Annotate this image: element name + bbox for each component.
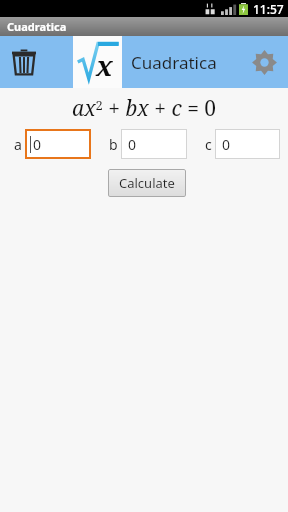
staticText: Calculate: [119, 174, 175, 192]
staticText: c: [205, 135, 212, 154]
staticText: a: [14, 135, 22, 154]
button[interactable]: Clear: [6, 44, 42, 80]
staticText: x: [96, 46, 113, 84]
staticText: b: [109, 135, 118, 154]
staticText: 0: [33, 135, 42, 154]
staticText: ax2 + bx + c = 0: [72, 94, 217, 123]
button[interactable]: 0: [215, 129, 280, 159]
staticText: 0: [222, 135, 231, 154]
button[interactable]: Calculate: [108, 169, 186, 197]
staticText: 0: [128, 135, 137, 154]
button[interactable]: Settings: [245, 43, 283, 81]
staticText: Cuadratica: [131, 51, 217, 74]
staticText: Cuadratica: [7, 19, 67, 34]
button[interactable]: 0: [25, 129, 91, 159]
button[interactable]: 0: [121, 129, 187, 159]
staticText: 11:57: [253, 1, 284, 17]
